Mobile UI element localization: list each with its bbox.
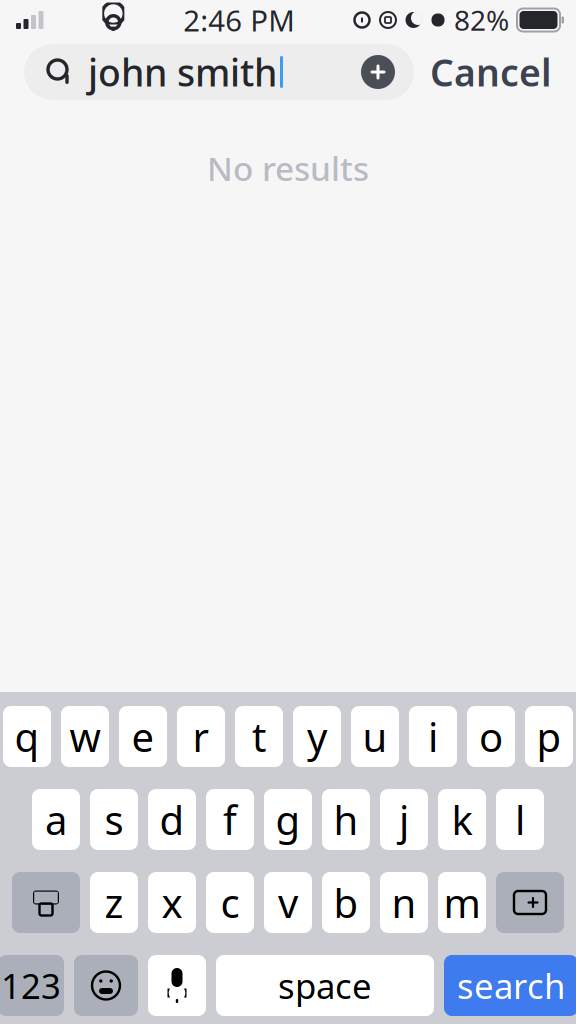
button[interactable]: Shift [12, 872, 80, 933]
button[interactable]: v [264, 872, 312, 933]
staticText: space [278, 962, 372, 1008]
button[interactable]: Cancel [414, 44, 568, 100]
button[interactable]: u [351, 706, 399, 767]
staticText: m [443, 876, 480, 929]
button[interactable]: a [32, 789, 80, 850]
staticText: r [192, 710, 209, 763]
button[interactable]: s [90, 789, 138, 850]
staticText: q [14, 710, 39, 763]
staticText: d [159, 793, 184, 846]
button[interactable]: f [206, 789, 254, 850]
staticText: 123 [1, 962, 61, 1008]
staticText: Cancel [430, 47, 552, 97]
staticText: a [45, 793, 67, 846]
staticText: b [333, 876, 358, 929]
staticText: n [391, 876, 416, 929]
button[interactable]: e [119, 706, 167, 767]
button[interactable]: l [496, 789, 544, 850]
staticText: 82% [454, 1, 509, 39]
button[interactable]: space [216, 955, 434, 1016]
staticText: s [104, 793, 123, 846]
staticText: p [536, 710, 561, 763]
staticText: h [333, 793, 358, 846]
button[interactable]: i [409, 706, 457, 767]
button[interactable]: o [467, 706, 515, 767]
staticText: search [457, 962, 565, 1008]
staticText: v [278, 876, 298, 929]
button[interactable]: r [177, 706, 225, 767]
staticText: w [69, 710, 100, 763]
button[interactable]: w [61, 706, 109, 767]
staticText: g [275, 793, 300, 846]
button[interactable]: y [293, 706, 341, 767]
button[interactable]: q [3, 706, 51, 767]
button[interactable]: m [438, 872, 486, 933]
button[interactable]: c [206, 872, 254, 933]
staticText: o [479, 710, 503, 763]
staticText: i [428, 710, 438, 763]
staticText: y [307, 710, 327, 763]
staticText: z [104, 876, 123, 929]
staticText: j [399, 793, 409, 846]
staticText: l [515, 793, 525, 846]
button[interactable]: z [90, 872, 138, 933]
staticText: x [161, 876, 182, 929]
staticText: k [451, 793, 472, 846]
button[interactable]: k [438, 789, 486, 850]
button[interactable]: 123 [0, 955, 64, 1016]
staticText: t [252, 710, 266, 763]
button[interactable]: j [380, 789, 428, 850]
staticText: No results [207, 146, 369, 190]
button[interactable]: Clear text [352, 46, 404, 98]
staticText: e [131, 710, 154, 763]
staticText: 2:46 PM [183, 0, 295, 39]
button[interactable]: p [525, 706, 573, 767]
button[interactable]: x [148, 872, 196, 933]
button[interactable]: search [444, 955, 576, 1016]
button[interactable]: Emoji keyboard [74, 955, 138, 1016]
button[interactable]: Dictation [148, 955, 206, 1016]
staticText: u [362, 710, 387, 763]
button[interactable]: b [322, 872, 370, 933]
button[interactable]: h [322, 789, 370, 850]
button[interactable]: n [380, 872, 428, 933]
button[interactable]: t [235, 706, 283, 767]
button[interactable]: Delete [496, 872, 564, 933]
staticText: f [223, 793, 237, 846]
button[interactable]: d [148, 789, 196, 850]
staticText: c [220, 876, 239, 929]
button[interactable]: g [264, 789, 312, 850]
staticText: john smith [88, 47, 277, 97]
